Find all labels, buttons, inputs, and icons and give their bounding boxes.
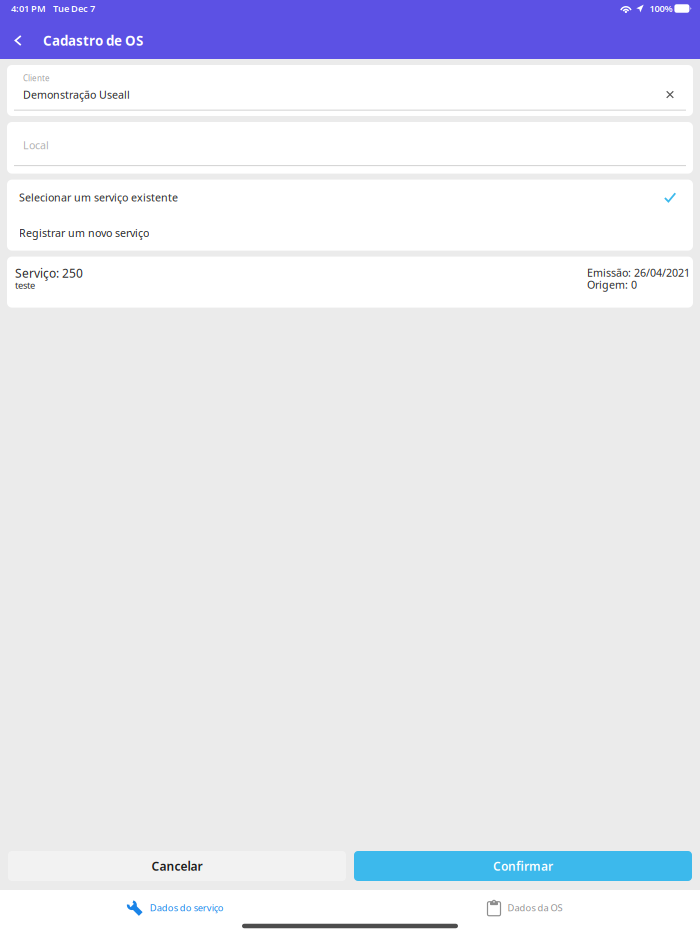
button[interactable]: Dados do serviço: [0, 895, 350, 921]
staticText: teste: [15, 279, 35, 291]
staticText: Serviço: 250: [15, 265, 83, 281]
staticText: Tue Dec 7: [53, 2, 95, 15]
staticText: Cliente: [23, 73, 50, 83]
staticText: Dados da OS: [507, 902, 562, 914]
button[interactable]: Registrar um novo serviço: [7, 215, 693, 251]
button[interactable]: Serviço: 250: [7, 257, 693, 308]
staticText: Emissão: 26/04/2021: [587, 265, 690, 280]
staticText: Selecionar um serviço existente: [19, 190, 178, 204]
staticText: Origem: 0: [587, 277, 637, 292]
staticText: 4:01 PM: [11, 2, 46, 15]
button[interactable]: Confirmar: [354, 851, 692, 881]
staticText: Cadastro de OS: [43, 32, 143, 49]
button[interactable]: Dados da OS: [350, 895, 700, 921]
staticText: Registrar um novo serviço: [19, 226, 149, 240]
staticText: Dados do serviço: [150, 902, 224, 914]
button[interactable]: Clear text: [666, 91, 693, 99]
staticText: Demonstração Useall: [23, 87, 130, 102]
button[interactable]: Cancelar: [8, 851, 346, 881]
staticText: Confirmar: [493, 858, 553, 874]
staticText: Cancelar: [151, 858, 202, 874]
staticText: Local: [23, 138, 49, 152]
staticText: 100%: [649, 2, 672, 15]
button[interactable]: Selecionar um serviço existente: [7, 180, 693, 215]
button[interactable]: Back: [3, 22, 33, 59]
